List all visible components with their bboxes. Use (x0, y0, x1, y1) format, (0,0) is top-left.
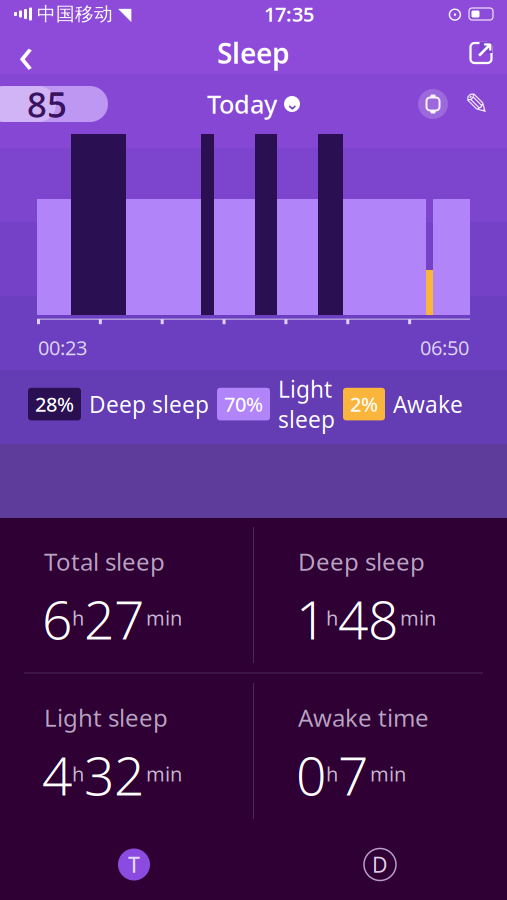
staticText: 85 (27, 81, 67, 127)
button[interactable]: Share (455, 29, 507, 77)
staticText: 中国移动 (37, 2, 113, 25)
staticText: 6 (42, 583, 72, 654)
staticText: 17:35 (264, 1, 314, 27)
button[interactable]: Tips (108, 838, 160, 890)
staticText: 32 (84, 739, 144, 810)
staticText: Light sleep (44, 701, 168, 733)
staticText: min (146, 604, 182, 631)
staticText: 7 (338, 739, 368, 810)
staticText: ‹ (18, 19, 34, 87)
staticText: Light sleep (278, 374, 335, 434)
staticText: 28% (35, 391, 74, 417)
staticText: ⌄ (285, 95, 298, 113)
staticText: min (370, 760, 406, 787)
staticText: Awake time (298, 701, 429, 733)
staticText: ✎ (464, 87, 489, 121)
button[interactable]: Device (411, 82, 455, 126)
staticText: 1 (296, 583, 326, 654)
staticText: D (372, 850, 388, 879)
staticText: h (72, 604, 84, 631)
staticText: 27 (84, 583, 144, 654)
staticText: Deep sleep (89, 389, 209, 419)
staticText: Deep sleep (298, 545, 425, 577)
staticText: min (146, 760, 182, 787)
staticText: T (128, 850, 140, 879)
staticText: 2% (350, 391, 378, 417)
staticText: h (326, 760, 338, 787)
staticText: Today (207, 87, 277, 121)
staticText: Sleep (217, 34, 290, 72)
staticText: 00:23 (38, 334, 87, 361)
staticText: 85 (27, 81, 67, 127)
button[interactable]: Details (354, 838, 406, 890)
button[interactable]: Sleep score 85 (0, 86, 108, 122)
staticText: 4 (42, 739, 72, 810)
staticText: min (400, 604, 436, 631)
staticText: 70% (224, 391, 263, 417)
staticText: 06:50 (420, 334, 469, 361)
staticText: ◥ (118, 4, 131, 24)
staticText: h (326, 604, 338, 631)
staticText: Total sleep (44, 545, 165, 577)
button[interactable]: Back (0, 29, 52, 77)
staticText: h (72, 760, 84, 787)
staticText: ↗ (475, 38, 494, 63)
staticText: ⊙ (447, 3, 463, 25)
staticText: 48 (338, 583, 398, 654)
staticText: Awake (393, 389, 463, 419)
staticText: 0 (296, 739, 326, 810)
button[interactable]: Edit (455, 82, 499, 126)
